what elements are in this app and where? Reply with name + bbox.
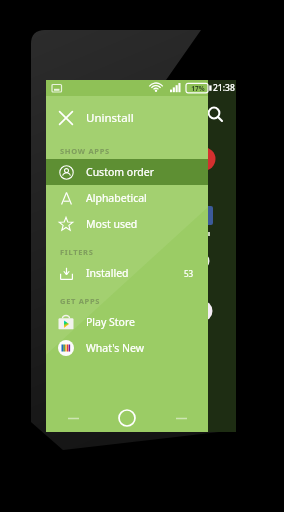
staticText: 17% (191, 84, 205, 93)
staticText: SHOW APPS (60, 146, 110, 156)
staticText: Uninstall (86, 110, 134, 126)
staticText: 53 (184, 268, 194, 279)
button[interactable]: Most used (46, 211, 208, 237)
button[interactable]: Alphabetical (46, 185, 208, 211)
staticText: FILTERS (60, 247, 94, 257)
button[interactable]: Home (100, 404, 154, 432)
button[interactable]: Uninstall (46, 96, 208, 140)
staticText: What's New (86, 341, 144, 355)
staticText: Alphabetical (86, 191, 147, 205)
staticText: Custom order (86, 165, 155, 179)
staticText: Play Store (86, 315, 135, 329)
staticText: GET APPS (60, 296, 101, 306)
button[interactable]: Installed (46, 260, 208, 286)
button[interactable]: Play Store (46, 309, 208, 335)
staticText: Installed (86, 266, 129, 280)
button[interactable]: Recents (154, 404, 208, 432)
button[interactable]: What's New (46, 335, 208, 361)
staticText: Most used (86, 217, 138, 231)
staticText: 21:38 (213, 82, 235, 94)
button[interactable]: Custom order (46, 159, 208, 185)
button[interactable]: Back (46, 404, 100, 432)
